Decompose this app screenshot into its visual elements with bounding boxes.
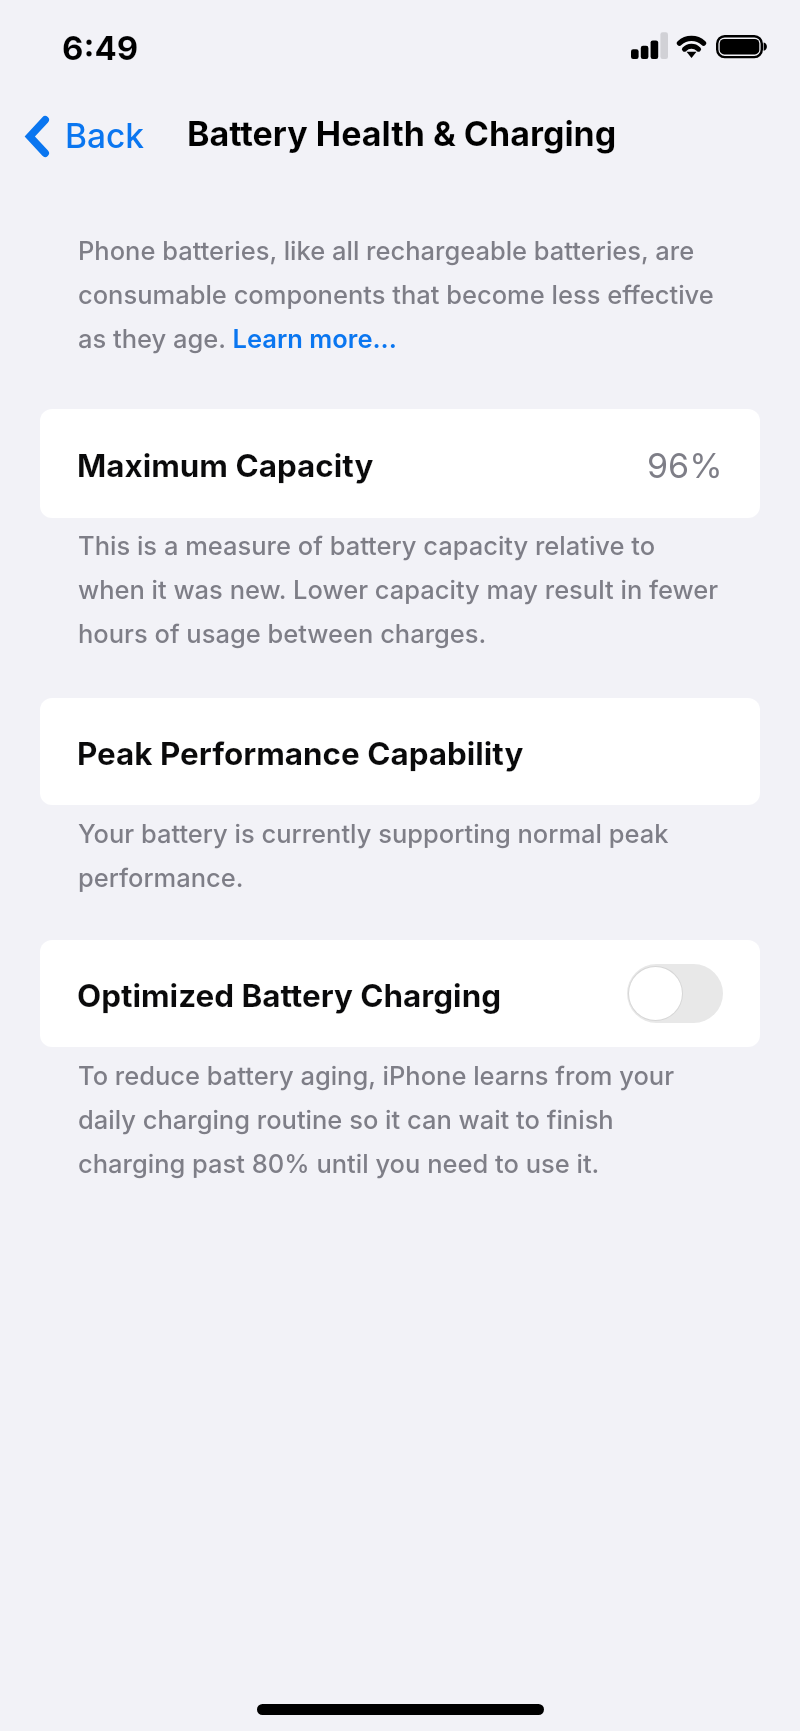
staticText: Maximum Capacity	[77, 447, 374, 485]
button[interactable]: Maximum Capacity	[40, 409, 760, 518]
button[interactable]: Back	[26, 101, 145, 171]
other: Back	[26, 116, 49, 157]
staticText: Battery Health & Charging	[187, 113, 617, 154]
button[interactable]: Optimized Battery Charging	[40, 940, 760, 1047]
button[interactable]: Peak Performance Capability	[40, 698, 760, 805]
button[interactable]: Learn more about battery health	[231, 320, 395, 356]
staticText: This is a measure of battery capacity re…	[78, 520, 719, 652]
other: Cellular signal, Wi-Fi, battery full	[626, 30, 772, 64]
staticText: Peak Performance Capability	[77, 735, 524, 773]
staticText: Back	[65, 116, 145, 157]
staticText: Optimized Battery Charging	[77, 977, 502, 1015]
staticText: Your battery is currently supporting nor…	[78, 808, 669, 896]
staticText: To reduce battery aging, iPhone learns f…	[78, 1050, 675, 1182]
staticText: 6:49	[62, 28, 139, 68]
button[interactable]: Optimized Battery Charging, off	[627, 964, 723, 1023]
staticText: Phone batteries, like all rechargeable b…	[78, 225, 714, 357]
staticText: 96%	[647, 445, 723, 486]
